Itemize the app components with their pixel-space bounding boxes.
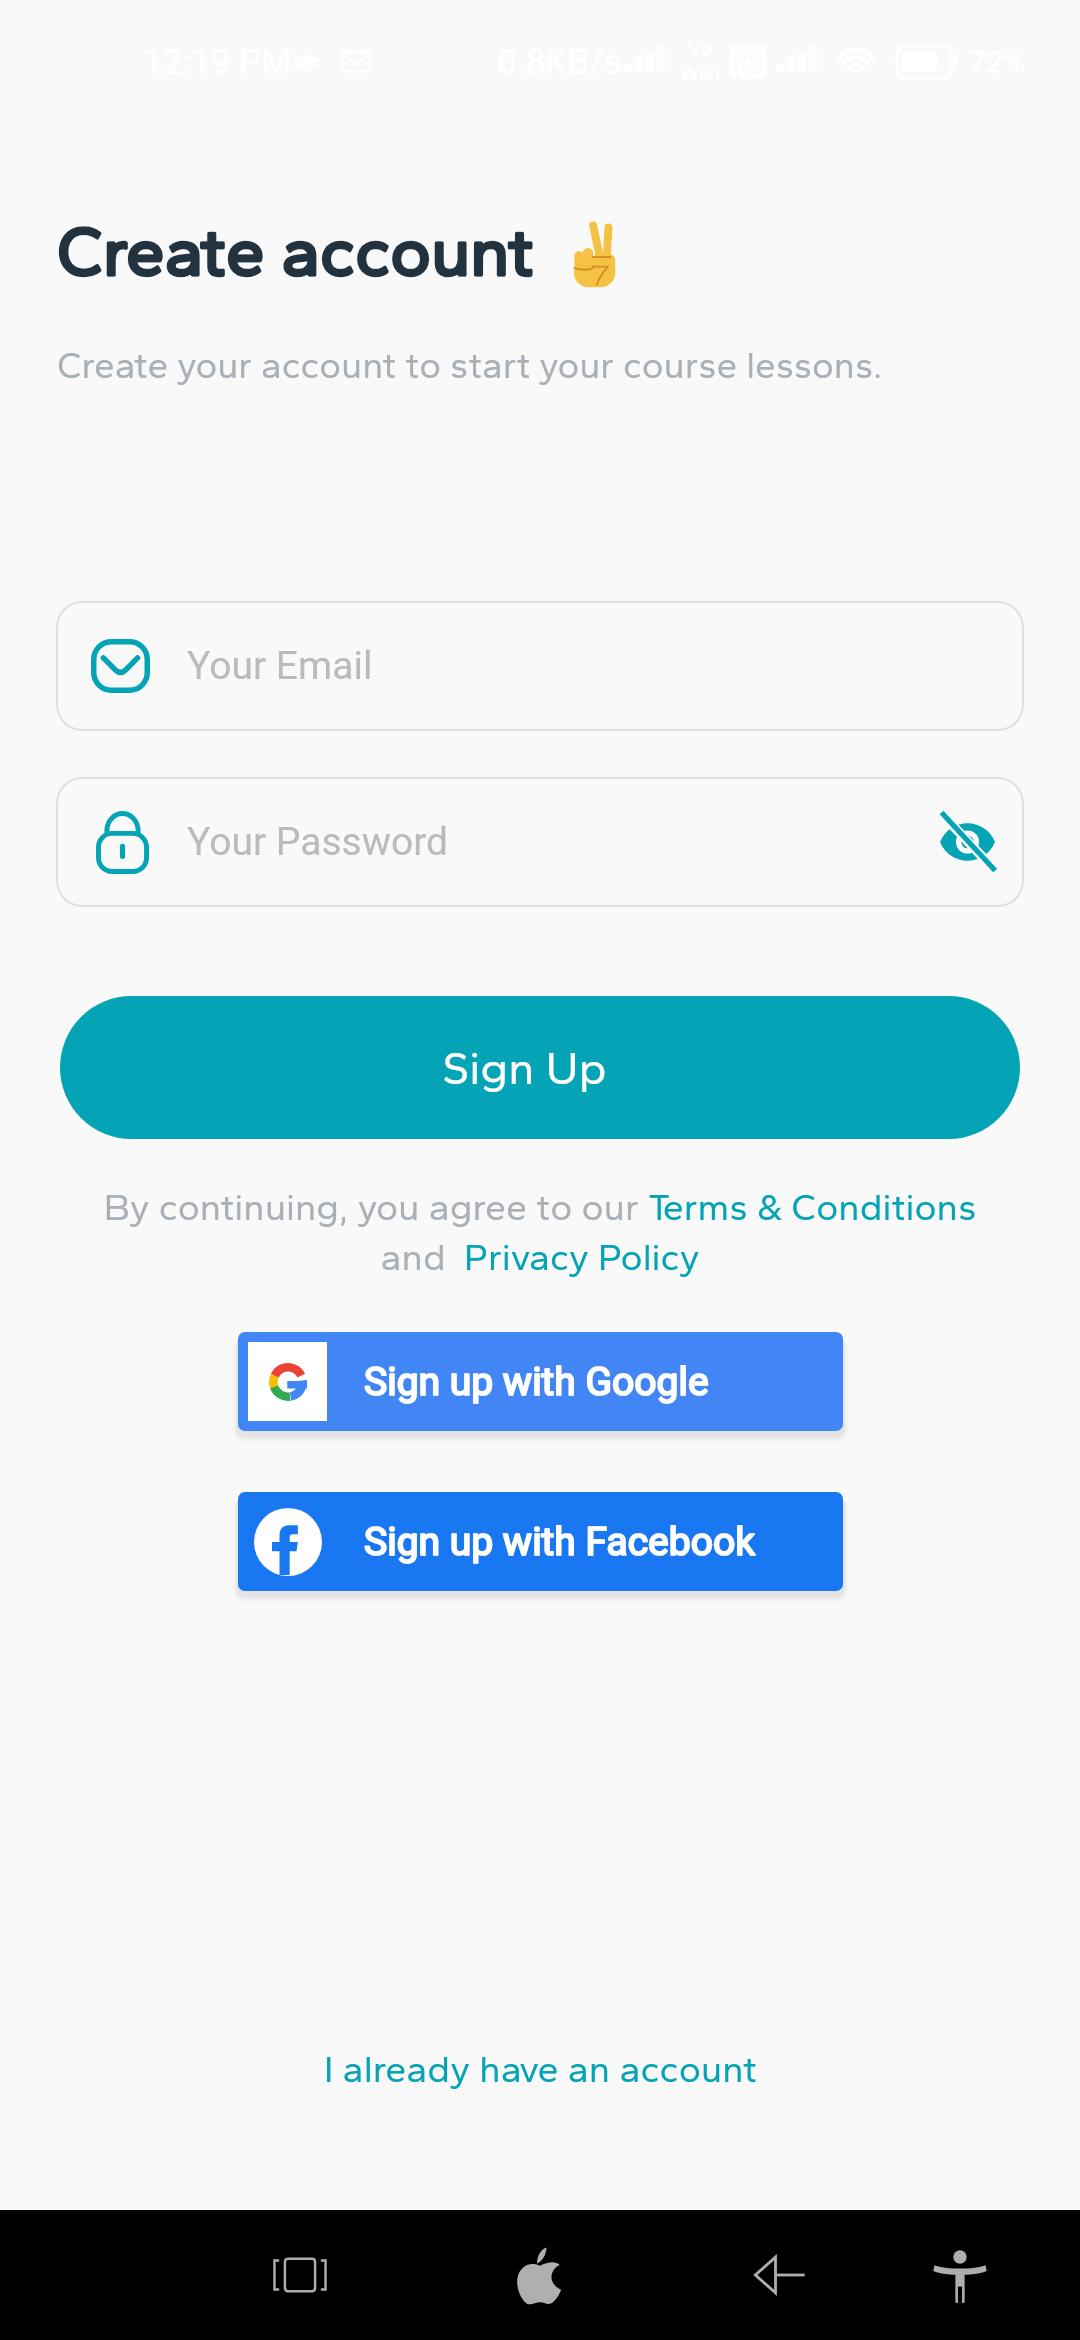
staticText: Create your account to start your course…	[57, 343, 883, 387]
button[interactable]: Show password	[940, 816, 995, 868]
button[interactable]: Sign up with Facebook	[238, 1492, 843, 1591]
staticText: Sign up with Google	[364, 1359, 709, 1405]
button[interactable]: Your Password	[56, 777, 1024, 907]
button[interactable]: Sign up with Google	[238, 1332, 843, 1431]
button[interactable]: Sign Up	[60, 996, 1020, 1139]
button[interactable]: Home	[485, 2210, 595, 2340]
button[interactable]: Recent apps	[245, 2210, 355, 2340]
staticText: Sign up with Facebook	[364, 1519, 755, 1565]
staticText: Sign up with Facebook	[364, 1519, 755, 1565]
button[interactable]: Your Email	[56, 601, 1024, 731]
button[interactable]: I already have an account	[316, 2042, 765, 2095]
button[interactable]: Back	[725, 2210, 835, 2340]
staticText: Your Password	[187, 819, 449, 865]
staticText: Sign up with Google	[364, 1359, 709, 1405]
button[interactable]: Accessibility	[905, 2210, 1015, 2340]
staticText: Your Email	[187, 643, 373, 689]
staticText: Create account	[57, 209, 534, 292]
staticText: By continuing, you agree to our Terms & …	[0, 1184, 1080, 1280]
staticText: Sign Up	[442, 1040, 607, 1095]
staticText: Create account	[57, 209, 534, 292]
